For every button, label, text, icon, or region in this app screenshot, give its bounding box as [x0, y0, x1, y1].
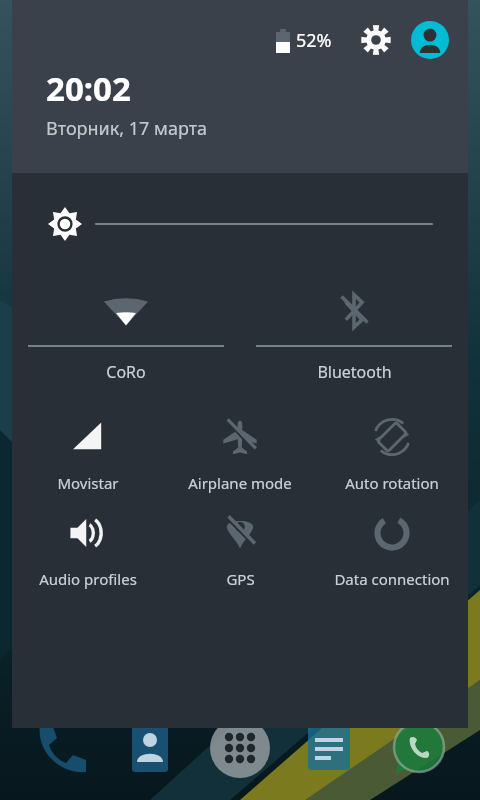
staticText: 52% — [296, 28, 332, 53]
button[interactable]: Battery 52 percent — [272, 24, 336, 57]
staticText: 20:02 — [46, 66, 131, 111]
button[interactable]: Movistar — [12, 415, 164, 493]
staticText: Bluetooth — [317, 361, 392, 383]
button[interactable]: Auto rotation — [316, 415, 468, 493]
button[interactable]: Bluetooth — [240, 275, 468, 387]
button[interactable]: Settings — [354, 18, 398, 62]
button[interactable]: CoRo — [12, 275, 240, 387]
staticText: Audio profiles — [39, 569, 137, 589]
staticText: Data connection — [334, 569, 450, 589]
button[interactable]: GPS — [164, 511, 316, 589]
button[interactable]: Airplane mode — [164, 415, 316, 493]
button[interactable]: Audio profiles — [12, 511, 164, 589]
button[interactable]: User profile — [408, 18, 452, 62]
button[interactable]: Brightness — [12, 201, 468, 247]
staticText: CoRo — [106, 361, 146, 383]
staticText: Movistar — [57, 473, 119, 493]
staticText: GPS — [226, 569, 255, 589]
staticText: Auto rotation — [345, 473, 439, 493]
button[interactable]: Data connection — [316, 511, 468, 589]
staticText: Airplane mode — [188, 473, 292, 493]
staticText: Вторник, 17 марта — [46, 116, 208, 141]
